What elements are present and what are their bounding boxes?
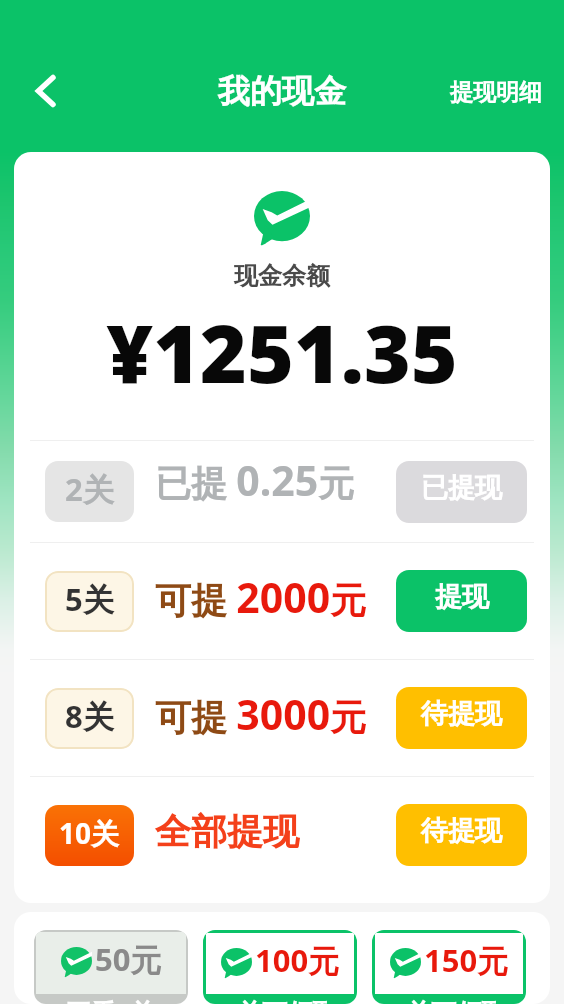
button[interactable]: 150元 (372, 930, 526, 1004)
staticText: 提现 (435, 580, 489, 614)
button[interactable]: 提现 (396, 570, 527, 632)
button[interactable]: 待提现 (396, 687, 527, 749)
staticText: 150元 (424, 939, 509, 981)
staticText: 9关可领取 (392, 995, 507, 1004)
staticText: 现金余额 (14, 261, 550, 291)
staticText: 全部提现 (155, 809, 299, 854)
staticText: 我的现金 (218, 71, 346, 111)
staticText: ¥1251.35 (14, 297, 550, 406)
staticText: 可提 2000元 (155, 569, 367, 625)
button[interactable]: 已提现 (396, 461, 527, 523)
button[interactable]: 100元 (203, 930, 357, 1004)
staticText: 5关 (65, 578, 114, 620)
staticText: 可提 3000元 (155, 686, 367, 742)
staticText: 100元 (255, 939, 340, 981)
staticText: 待提现 (421, 814, 502, 848)
button[interactable]: Back (22, 67, 70, 115)
button[interactable]: 提现明细 (428, 72, 564, 113)
button[interactable]: 待提现 (396, 804, 527, 866)
button[interactable]: 50元 (34, 930, 188, 1004)
staticText: 待提现 (421, 697, 502, 731)
staticText: 已提 0.25元 (155, 452, 355, 508)
staticText: 50元 (95, 938, 162, 980)
staticText: 已提现 (421, 471, 502, 505)
staticText: 提现明细 (450, 78, 542, 107)
staticText: 2关 (65, 468, 114, 510)
staticText: 10关 (59, 814, 120, 852)
staticText: 再看5关 (66, 995, 156, 1004)
staticText: 8关 (65, 695, 114, 737)
staticText: 8关可领取 (223, 995, 338, 1004)
